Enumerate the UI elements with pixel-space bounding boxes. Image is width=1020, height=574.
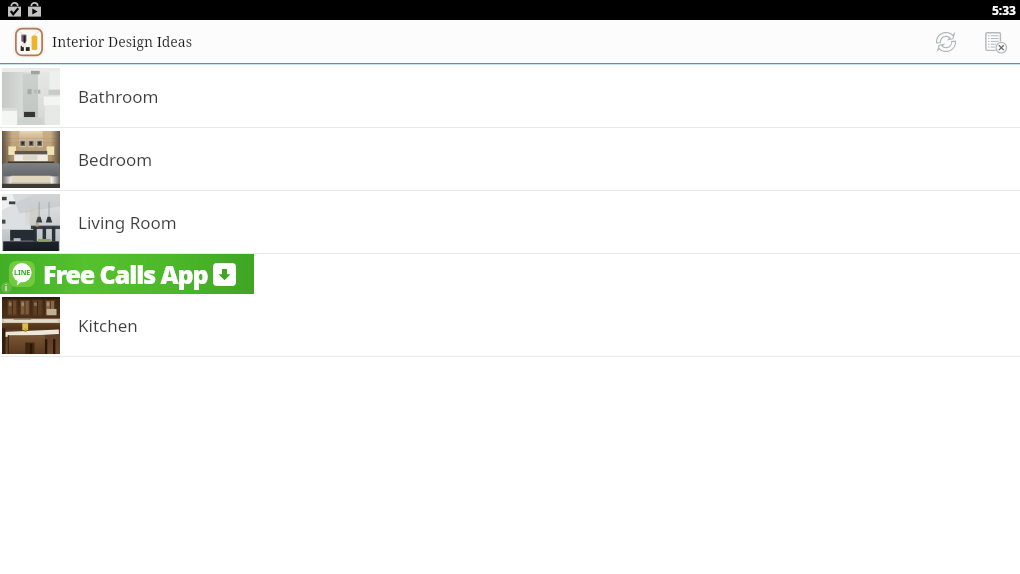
staticText: Free Calls App — [43, 257, 208, 291]
staticText: Living Room — [78, 211, 177, 234]
staticText: Kitchen — [78, 314, 138, 337]
button[interactable]: Kitchen — [0, 294, 1020, 357]
staticText: LINE — [14, 268, 31, 278]
button[interactable]: Clear list — [974, 20, 1018, 63]
button[interactable]: Refresh — [924, 20, 968, 63]
button[interactable]: Free Calls App advertisement — [0, 254, 254, 294]
button[interactable]: Living Room — [0, 191, 1020, 254]
staticText: Bathroom — [78, 85, 159, 108]
button[interactable]: Bedroom — [0, 128, 1020, 191]
button[interactable]: Bathroom — [0, 65, 1020, 128]
staticText: 5:33 — [992, 2, 1016, 18]
staticText: Interior Design Ideas — [52, 32, 193, 51]
staticText: i — [5, 282, 8, 293]
staticText: Bedroom — [78, 148, 153, 171]
